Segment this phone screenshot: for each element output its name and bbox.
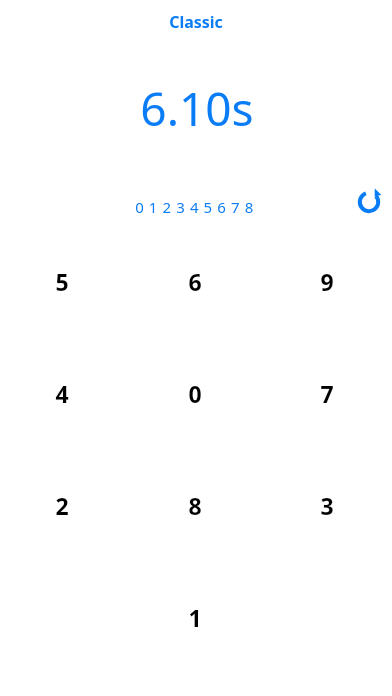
staticText: 2: [55, 490, 69, 521]
staticText: 0: [188, 378, 202, 409]
staticText: 1: [188, 602, 202, 633]
staticText: 6.10s: [140, 77, 254, 140]
staticText: 5: [55, 266, 69, 297]
staticText: 3: [320, 490, 334, 521]
button[interactable]: Restart: [352, 187, 386, 221]
staticText: 4: [55, 378, 69, 409]
staticText: 7: [320, 378, 334, 409]
staticText: 8: [188, 490, 202, 521]
staticText: 6: [188, 266, 202, 297]
button[interactable]: Classic: [0, 0, 180, 32]
staticText: Classic: [169, 11, 223, 33]
staticText: 0 1 2 3 4 5 6 7 8: [135, 197, 254, 217]
staticText: 9: [320, 266, 334, 297]
